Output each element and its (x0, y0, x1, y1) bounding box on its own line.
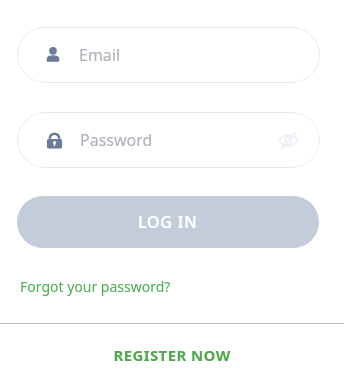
button[interactable]: Show password (274, 126, 302, 154)
button[interactable]: Forgot your password? (20, 277, 171, 296)
button[interactable]: REGISTER NOW (0, 336, 344, 374)
staticText: Password (80, 129, 153, 151)
staticText: Email (79, 44, 121, 66)
staticText: REGISTER NOW (113, 345, 231, 365)
button[interactable]: Password (17, 112, 320, 168)
staticText: LOG IN (138, 211, 198, 233)
button[interactable]: Email (17, 27, 320, 83)
staticText: Forgot your password? (20, 277, 171, 296)
button[interactable]: LOG IN (17, 196, 319, 248)
